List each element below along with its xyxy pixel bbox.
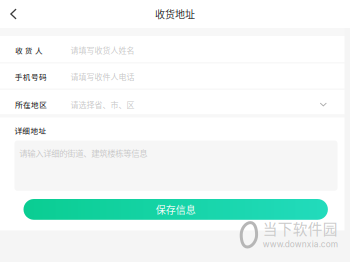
button[interactable]: Back <box>0 0 25 28</box>
button[interactable]: 手机号码 <box>0 63 350 89</box>
button[interactable]: 保存信息 <box>23 199 328 220</box>
staticText: 手机号码 <box>15 71 47 82</box>
staticText: 请输入详细的街道、建筑楼栋等信息 <box>19 147 147 159</box>
staticText: 请选择省、市、区 <box>71 99 135 110</box>
staticText: 当下软件园 <box>263 218 338 239</box>
staticText: www.downxia.com <box>263 239 338 249</box>
staticText: 所在地区 <box>15 99 47 110</box>
button[interactable]: 收 货 人 <box>0 36 350 63</box>
staticText: 保存信息 <box>156 202 196 217</box>
staticText: 收货地址 <box>155 7 195 21</box>
staticText: 详细地址 <box>15 125 47 136</box>
staticText: 请填写收货人姓名 <box>71 44 135 56</box>
button[interactable]: 所在地区 <box>0 89 350 114</box>
staticText: 请填写收件人电话 <box>71 71 135 82</box>
staticText: 收 货 人 <box>15 45 43 56</box>
